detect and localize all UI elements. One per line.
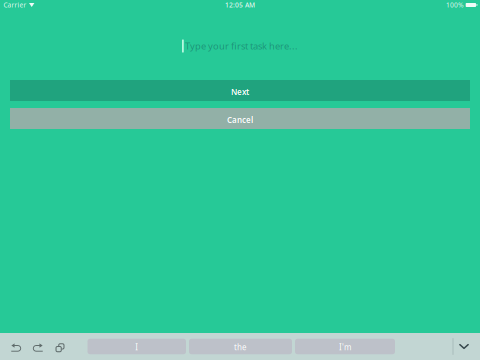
staticText: Carrier — [3, 1, 26, 9]
button[interactable]: Next — [10, 80, 470, 101]
button[interactable]: Hide keyboard — [453, 333, 474, 360]
staticText: Next — [231, 87, 249, 97]
button[interactable]: Undo — [5, 333, 27, 360]
button[interactable]: I'm — [295, 339, 395, 354]
button[interactable]: the — [189, 339, 292, 354]
staticText: the — [234, 342, 247, 352]
staticText: Type your first task here... — [185, 40, 298, 52]
button[interactable]: Redo — [27, 333, 49, 360]
button[interactable]: Cancel — [10, 108, 470, 129]
staticText: Cancel — [227, 115, 253, 125]
button[interactable]: Paste — [49, 333, 71, 360]
button[interactable]: I — [87, 339, 186, 354]
staticText: 100% — [446, 1, 464, 9]
staticText: I — [135, 342, 138, 352]
staticText: 12:05 AM — [225, 1, 255, 9]
staticText: I'm — [339, 342, 351, 352]
